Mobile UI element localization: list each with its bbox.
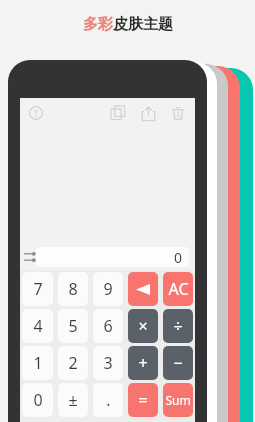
button[interactable]: ÷ xyxy=(163,309,193,343)
staticText: AC xyxy=(168,278,189,300)
staticText: 2 xyxy=(68,352,78,374)
staticText: ? xyxy=(34,108,38,119)
button[interactable]: Help xyxy=(27,104,45,122)
staticText: 4 xyxy=(33,315,43,337)
staticText: ± xyxy=(68,389,78,411)
button[interactable]: Sum xyxy=(163,383,193,417)
button[interactable]: 9 xyxy=(93,272,123,306)
button[interactable]: 7 xyxy=(22,272,53,306)
staticText: 0 xyxy=(33,389,43,411)
button[interactable]: 3 xyxy=(93,346,123,380)
button[interactable]: Backspace xyxy=(128,272,158,306)
staticText: 8 xyxy=(68,278,78,300)
staticText: 5 xyxy=(68,315,78,337)
button[interactable]: 8 xyxy=(58,272,88,306)
staticText: 7 xyxy=(33,278,43,300)
staticText: 多彩皮肤主题 xyxy=(83,15,173,34)
button[interactable]: AC xyxy=(163,272,193,306)
button[interactable]: Copy xyxy=(108,103,128,123)
staticText: = xyxy=(138,389,148,411)
button[interactable]: ± xyxy=(58,383,88,417)
button[interactable]: 6 xyxy=(93,309,123,343)
button[interactable]: Delete xyxy=(168,103,188,123)
button[interactable]: . xyxy=(93,383,123,417)
staticText: 1 xyxy=(33,352,43,374)
staticText: + xyxy=(138,352,148,374)
staticText: ÷ xyxy=(173,315,183,337)
staticText: − xyxy=(173,352,183,374)
staticText: 9 xyxy=(103,278,113,300)
button[interactable]: = xyxy=(128,383,158,417)
staticText: . xyxy=(106,389,111,411)
button[interactable]: 1 xyxy=(22,346,53,380)
staticText: Sum xyxy=(165,392,191,408)
button[interactable]: − xyxy=(163,346,193,380)
staticText: 0 xyxy=(174,248,183,267)
button[interactable]: × xyxy=(128,309,158,343)
button[interactable]: Share xyxy=(138,103,158,123)
button[interactable]: + xyxy=(128,346,158,380)
button[interactable]: 4 xyxy=(22,309,53,343)
button[interactable]: 0 xyxy=(22,383,53,417)
button[interactable]: 5 xyxy=(58,309,88,343)
staticText: 6 xyxy=(103,315,113,337)
staticText: 3 xyxy=(103,352,113,374)
staticText: × xyxy=(138,315,148,337)
button[interactable]: 2 xyxy=(58,346,88,380)
